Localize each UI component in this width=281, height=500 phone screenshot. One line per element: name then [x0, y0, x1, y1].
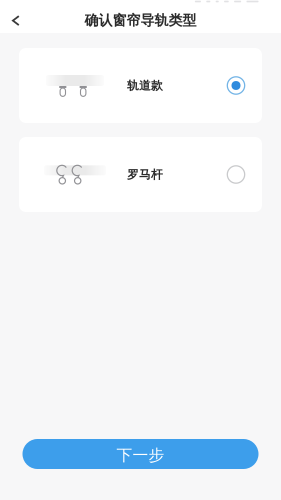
- button[interactable]: 罗马杆: [19, 137, 262, 212]
- button[interactable]: Back: [0, 10, 29, 30]
- button[interactable]: 轨道款: [19, 48, 262, 123]
- staticText: 确认窗帘导轨类型: [84, 12, 196, 29]
- staticText: 轨道款: [127, 78, 163, 93]
- button[interactable]: 下一步: [22, 439, 258, 469]
- staticText: 罗马杆: [127, 167, 163, 182]
- staticText: 下一步: [116, 445, 164, 465]
